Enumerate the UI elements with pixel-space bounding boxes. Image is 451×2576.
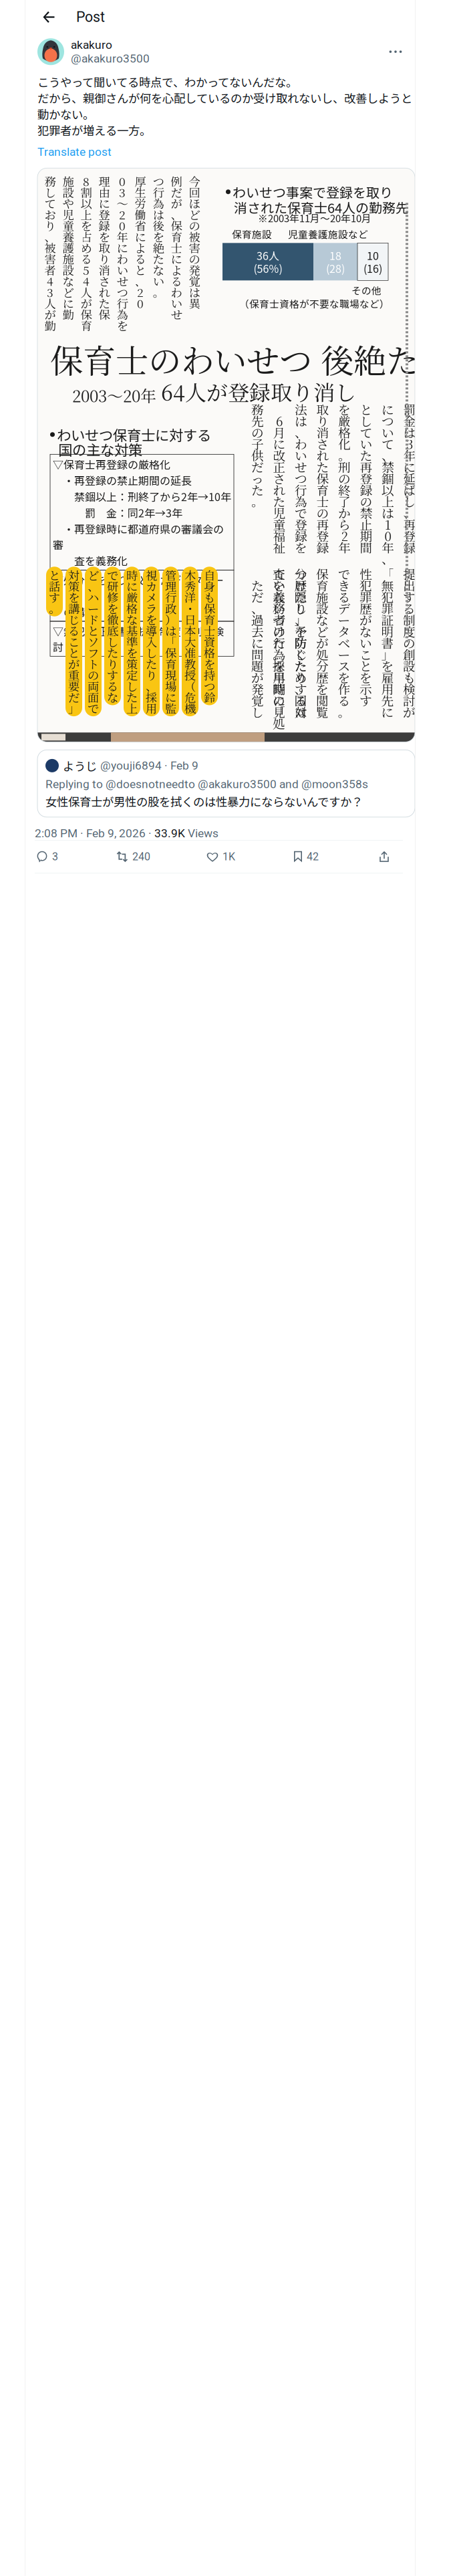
staticText: 登	[360, 469, 372, 487]
staticText: い	[117, 261, 128, 278]
staticText: な	[316, 611, 329, 629]
staticText: 供	[251, 446, 264, 464]
staticText: 策	[126, 655, 138, 672]
staticText: 働	[135, 206, 146, 223]
staticText: 罪	[381, 599, 394, 617]
staticText: る	[135, 250, 146, 267]
staticText: 童	[273, 515, 286, 533]
staticText: 准	[184, 644, 196, 661]
staticText: 検	[403, 680, 416, 698]
staticText: 時	[126, 567, 138, 583]
staticText: が	[403, 703, 416, 721]
staticText: 歴	[294, 576, 307, 594]
button[interactable]: 240	[116, 851, 206, 863]
button[interactable]: 42	[293, 851, 379, 863]
staticText: り	[107, 655, 118, 672]
staticText: き	[338, 576, 350, 594]
staticText: も	[403, 668, 416, 686]
staticText: 女性保育士が男性の股を拭くのは性暴力にならないんですか？	[45, 793, 363, 810]
staticText: ハ	[88, 589, 99, 605]
staticText: 犯罪者が増える一方。	[37, 122, 151, 138]
staticText: 36人	[257, 248, 279, 263]
staticText: つ	[153, 173, 164, 189]
staticText: 士	[204, 622, 215, 639]
staticText: 人	[44, 295, 56, 311]
staticText: 大	[184, 633, 196, 650]
staticText: (56%)	[254, 260, 282, 276]
staticText: 管	[165, 567, 176, 583]
staticText: り	[295, 668, 307, 686]
staticText: い	[171, 295, 182, 311]
button[interactable]: More	[384, 40, 407, 63]
staticText: 育	[171, 228, 182, 245]
staticText: 保育士のわいせつ 後絶たず	[50, 335, 451, 383]
staticText: ようじ	[63, 757, 97, 774]
staticText: 視	[146, 567, 157, 583]
staticText: 問	[251, 645, 264, 663]
staticText: わいせつ保育士に対する	[57, 424, 211, 445]
staticText: (28)	[326, 260, 345, 276]
staticText: ・再登録の禁止期間の延長	[53, 472, 192, 488]
button[interactable]: 3	[36, 851, 116, 863]
staticText: 歴	[316, 668, 329, 686]
staticText: 取	[316, 400, 329, 418]
staticText: の	[189, 217, 200, 234]
staticText: を	[338, 400, 351, 418]
button[interactable]: Back	[36, 4, 61, 30]
staticText: 隠	[294, 588, 307, 606]
staticText: 教	[184, 655, 196, 672]
staticText: 定	[126, 666, 138, 683]
staticText: ・	[184, 600, 196, 617]
staticText: こ	[359, 645, 372, 663]
staticText: だ	[251, 458, 264, 476]
staticText: 改	[273, 446, 286, 464]
staticText: 対	[68, 567, 80, 583]
staticText: を	[107, 600, 118, 617]
staticText: 年	[382, 538, 394, 556]
staticText: を	[204, 655, 215, 672]
staticText: ▽保育士再登録の厳格化	[53, 456, 170, 472]
staticText: 3	[406, 435, 413, 453]
staticText: 施	[316, 588, 329, 606]
staticText: 面	[88, 689, 99, 705]
staticText: と	[135, 261, 146, 278]
staticText: に	[382, 400, 394, 418]
staticText: 省	[135, 217, 146, 234]
staticText: た	[153, 250, 164, 267]
staticText: フ	[88, 644, 99, 661]
staticText: カ	[146, 578, 157, 594]
staticText: 機	[184, 700, 196, 716]
staticText: 2:08 PM · Feb 9, 2026 ·	[35, 826, 154, 840]
staticText: た	[251, 481, 264, 499]
staticText: を	[153, 228, 164, 245]
staticText: 保育施設	[232, 227, 272, 241]
button[interactable]: Translate post	[25, 138, 415, 159]
staticText: 児	[62, 206, 74, 223]
button[interactable]: ようじ	[25, 742, 415, 817]
staticText: 士	[316, 492, 329, 510]
staticText: 18	[329, 248, 341, 263]
staticText: り	[146, 666, 157, 683]
staticText: 上	[126, 700, 138, 716]
staticText: と	[359, 657, 372, 675]
staticText: 持	[204, 666, 215, 683]
staticText: 雇	[381, 668, 394, 686]
staticText: つ	[295, 469, 307, 487]
staticText: 今	[189, 173, 200, 189]
staticText: な	[153, 261, 164, 278]
staticText: す	[49, 589, 60, 605]
button[interactable]: Share	[379, 851, 390, 863]
staticText: た	[146, 655, 157, 672]
staticText: 入	[146, 633, 157, 650]
staticText: 発	[189, 261, 200, 278]
staticText: を	[273, 657, 286, 675]
staticText: お	[44, 206, 56, 223]
staticText: よ	[135, 239, 146, 256]
button[interactable]: 1K	[206, 851, 293, 863]
staticText: 格	[204, 644, 215, 661]
staticText: 身	[204, 578, 215, 594]
staticText: その他	[351, 283, 382, 297]
